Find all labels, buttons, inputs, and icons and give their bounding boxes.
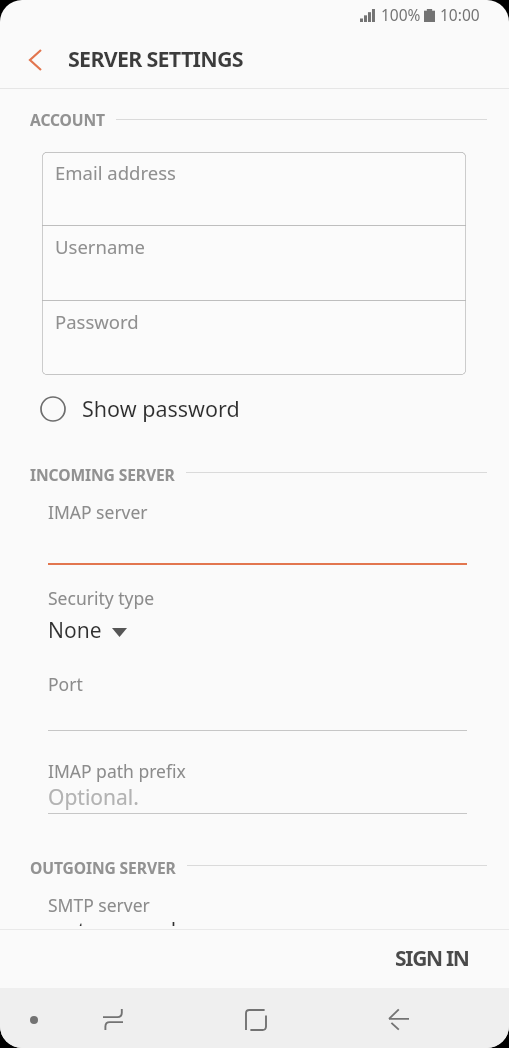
staticText: 100% (381, 4, 421, 25)
button[interactable]: IMAP path prefix (30, 748, 487, 816)
staticText: smtp.example.com (48, 916, 236, 926)
staticText: Port (48, 672, 83, 696)
button[interactable]: SIGN IN (361, 926, 509, 987)
staticText: Show password (82, 394, 240, 423)
staticText: IMAP path prefix (48, 759, 186, 783)
button[interactable]: Security type (30, 577, 487, 649)
staticText: Security type (48, 586, 155, 610)
button[interactable]: Home (230, 997, 281, 1042)
button[interactable]: Username (42, 226, 466, 300)
staticText: SIGN IN (395, 944, 469, 973)
staticText: SERVER SETTINGS (68, 44, 243, 73)
staticText: IMAP server (48, 500, 148, 524)
staticText: SMTP server (48, 893, 150, 917)
staticText: ACCOUNT (30, 109, 105, 129)
button[interactable]: Back (373, 997, 424, 1042)
staticText: Optional. (48, 783, 139, 812)
button[interactable]: Show keyboard (9, 997, 58, 1042)
staticText: OUTGOING SERVER (30, 857, 176, 877)
button[interactable]: Show password (0, 385, 509, 433)
staticText: Email address (55, 160, 176, 185)
staticText: INCOMING SERVER (30, 464, 175, 484)
button[interactable]: Navigate up (0, 33, 67, 87)
staticText: 10:00 (440, 4, 480, 25)
staticText: Password (55, 309, 139, 334)
button[interactable]: Password (42, 301, 466, 375)
button[interactable]: Recent apps (88, 997, 138, 1042)
button[interactable]: SMTP server (30, 882, 487, 926)
staticText: None (48, 616, 102, 645)
button[interactable]: IMAP server (30, 489, 487, 571)
button[interactable]: Port (30, 661, 487, 733)
staticText: Username (55, 234, 146, 259)
button[interactable]: Email address (42, 152, 466, 225)
